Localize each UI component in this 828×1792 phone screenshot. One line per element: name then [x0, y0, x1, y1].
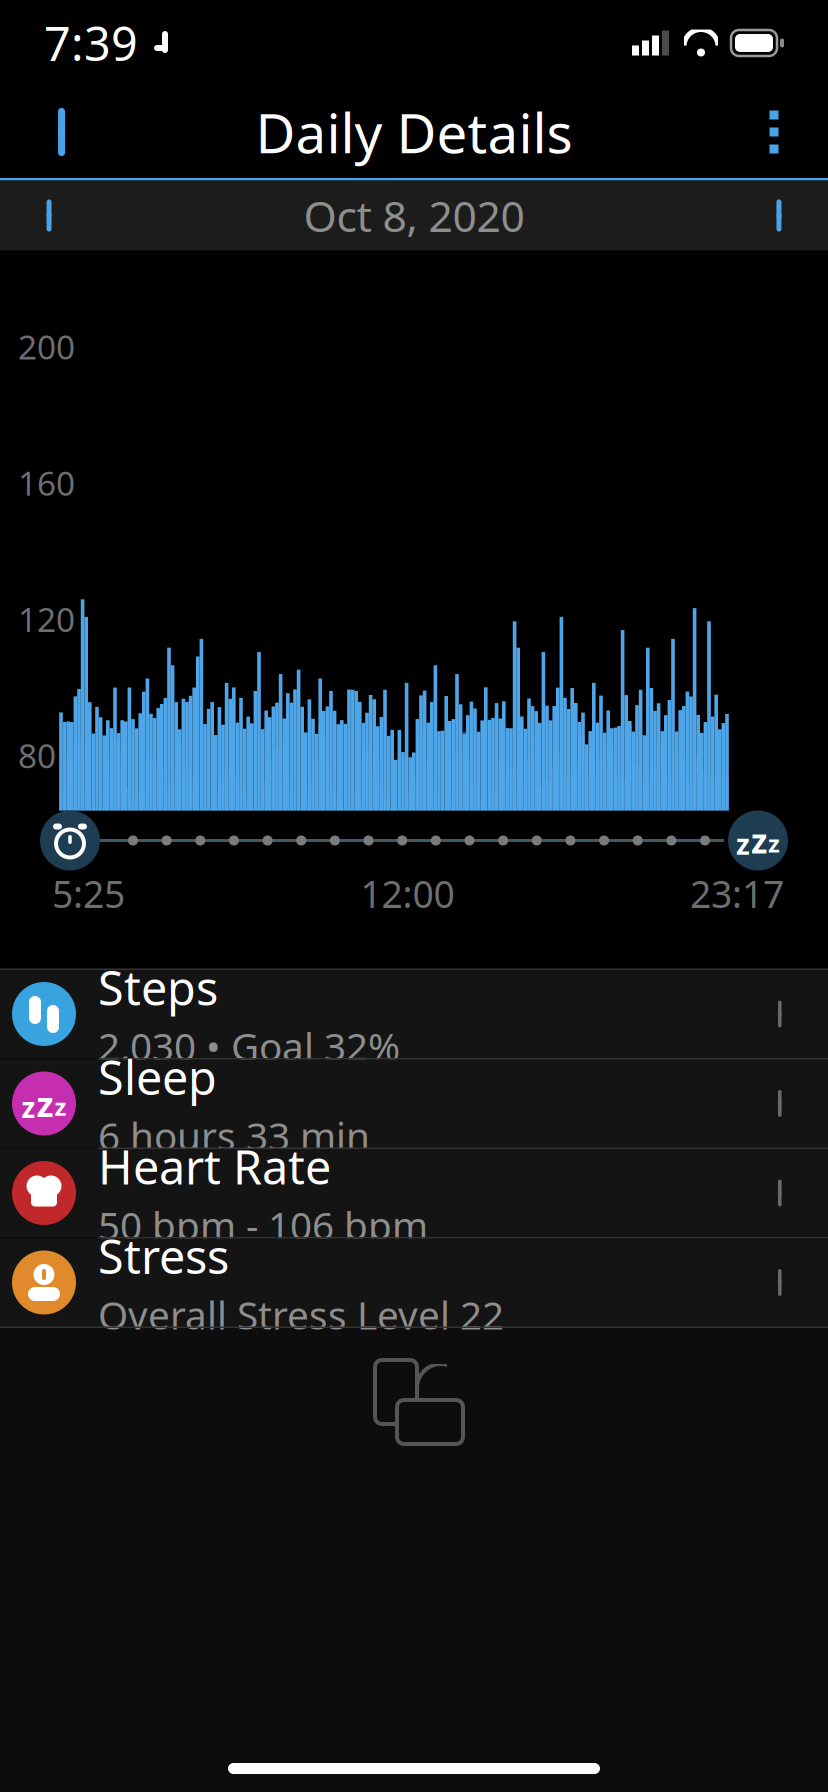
staticText: z: [736, 825, 750, 863]
staticText: z: [54, 1090, 66, 1122]
staticText: z: [36, 1080, 53, 1126]
staticText: z: [751, 818, 767, 863]
button[interactable]: Rotate device for more detail: [0, 1328, 828, 1478]
button[interactable]: Next day: [742, 180, 826, 250]
staticText: Oct 8, 2020: [303, 187, 524, 244]
staticText: 12:00: [360, 869, 454, 918]
staticText: Stress: [98, 1225, 229, 1287]
staticText: 6 hours 33 min: [98, 1110, 370, 1161]
staticText: 5:25: [52, 869, 125, 918]
staticText: 80: [18, 733, 56, 778]
staticText: 7:39: [44, 12, 138, 74]
button[interactable]: Previous day: [2, 180, 86, 250]
staticText: Sleep: [98, 1046, 217, 1108]
staticText: 2,030 • Goal 32%: [98, 1020, 400, 1072]
staticText: Steps: [98, 956, 218, 1018]
staticText: 160: [18, 461, 75, 505]
staticText: 200: [18, 324, 75, 369]
staticText: z: [21, 1088, 35, 1126]
staticText: 120: [18, 597, 75, 641]
staticText: Daily Details: [255, 96, 572, 168]
staticText: 23:17: [690, 869, 784, 918]
staticText: z: [768, 827, 780, 859]
staticText: Heart Rate: [98, 1135, 331, 1197]
button[interactable]: More options: [728, 86, 820, 178]
button[interactable]: Steps: [0, 970, 828, 1058]
staticText: Overall Stress Level 22: [98, 1289, 504, 1340]
button[interactable]: z: [0, 1059, 828, 1147]
button[interactable]: Heart Rate: [0, 1149, 828, 1237]
button[interactable]: Stress: [0, 1238, 828, 1326]
button[interactable]: Back: [8, 86, 100, 178]
staticText: 50 bpm - 106 bpm: [98, 1199, 428, 1251]
